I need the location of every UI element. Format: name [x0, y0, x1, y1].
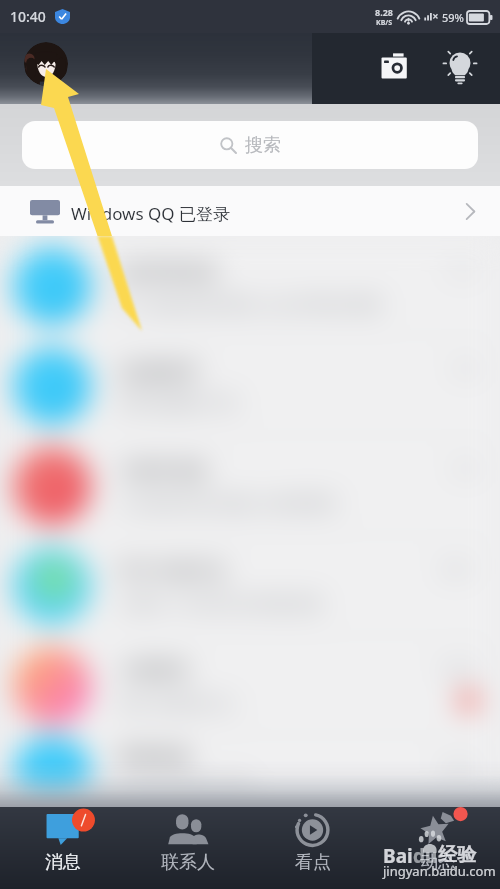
staticText: 今日热点推送已送达: [118, 779, 253, 798]
staticText: 59%: [442, 10, 464, 25]
staticText: du: [413, 843, 438, 869]
staticText: 群消息提醒已开启: [118, 394, 238, 413]
staticText: 看点: [295, 851, 331, 874]
button[interactable]: 订阅号消息: [0, 436, 500, 536]
staticText: 联系人: [161, 851, 215, 874]
button[interactable]: 小明同学: [0, 636, 500, 736]
staticText: Bai: [383, 843, 413, 869]
button[interactable]: 看点: [250, 807, 375, 889]
staticText: 8.28: [375, 6, 393, 18]
staticText: KB/S: [376, 18, 393, 28]
button[interactable]: 消息: [0, 807, 125, 889]
button[interactable]: Profile avatar: [24, 42, 68, 86]
button[interactable]: QQ群助手: [0, 336, 500, 436]
button[interactable]: 学习小组讨论: [0, 536, 500, 636]
button[interactable]: Camera: [378, 50, 410, 82]
staticText: 有 3 条新动态待查看, 点击立即前往看看: [118, 294, 383, 314]
staticText: Windows QQ 已登录: [71, 202, 231, 225]
staticText: QQ群助手: [118, 359, 201, 384]
staticText: 消息: [45, 851, 81, 874]
button[interactable]: 新闻速递: [0, 736, 500, 808]
staticText: 小明同学: [118, 660, 190, 683]
staticText: QQ空间动态: [118, 259, 219, 284]
button[interactable]: 联系人: [125, 807, 250, 889]
button[interactable]: Tips: [440, 49, 480, 89]
button[interactable]: QQ空间动态: [0, 236, 500, 336]
staticText: 搜索: [245, 134, 281, 157]
staticText: 动态: [420, 851, 456, 874]
staticText: 订阅号消息: [118, 460, 208, 483]
staticText: 经验: [438, 843, 476, 867]
button[interactable]: Windows QQ 已登录: [0, 186, 500, 236]
staticText: jingyan.baidu.com: [383, 862, 496, 880]
button[interactable]: 动态: [375, 807, 500, 889]
button[interactable]: 搜索: [22, 121, 478, 169]
staticText: 新闻速递: [118, 746, 190, 769]
staticText: 10:40: [10, 7, 46, 26]
